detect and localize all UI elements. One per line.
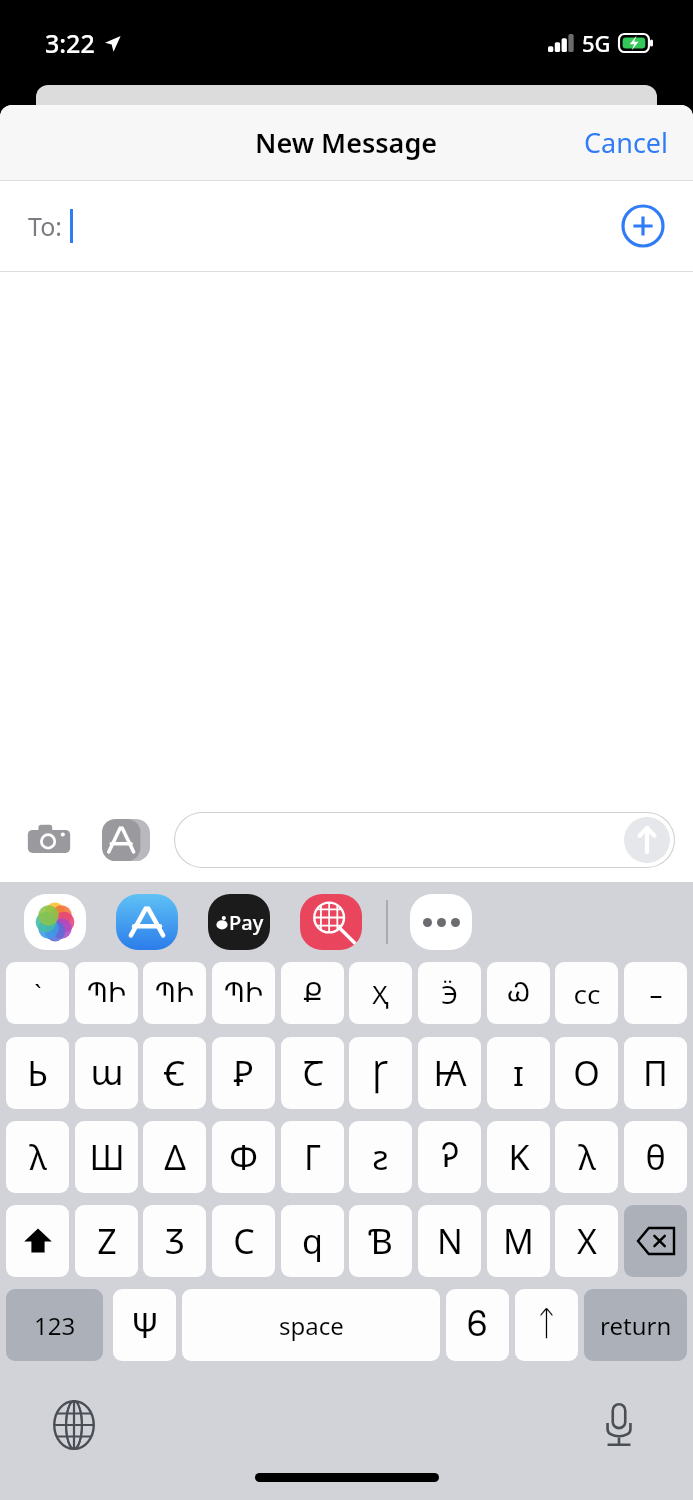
button[interactable]: Ν [418, 1205, 481, 1277]
staticText: λ [578, 1134, 596, 1180]
staticText: Δ [164, 1134, 186, 1180]
button[interactable]: Ӭ [418, 962, 481, 1024]
staticText: Ψ [131, 1302, 159, 1348]
button[interactable]: Ꮾ [446, 1289, 509, 1361]
button[interactable]: ՊԻ [143, 962, 206, 1024]
button[interactable]: Ꞇ [281, 1037, 344, 1109]
button[interactable]: ᛏ [515, 1289, 578, 1361]
button[interactable]: Ꙗ [418, 1037, 481, 1109]
button[interactable]: ` [6, 962, 69, 1024]
button[interactable]: Ɓ [349, 1205, 412, 1277]
button[interactable]: Ꮗ [487, 962, 550, 1024]
button[interactable]: ԛ [281, 1205, 344, 1277]
button[interactable]: Next keyboard [48, 1399, 100, 1451]
staticText: ա [90, 1053, 124, 1093]
button[interactable]: Π [624, 1037, 687, 1109]
button[interactable]: Κ [487, 1121, 550, 1193]
staticText: – [649, 976, 663, 1011]
button[interactable]: Shift [6, 1205, 69, 1277]
button[interactable]: λ [555, 1121, 618, 1193]
button[interactable]: Ꞓ [143, 1037, 206, 1109]
button[interactable]: Ь [6, 1037, 69, 1109]
button[interactable]: ՊԻ [75, 962, 138, 1024]
staticText: New Message [255, 124, 438, 161]
staticText: ՊԻ [155, 978, 194, 1008]
staticText: Ꮾ [467, 1308, 488, 1342]
button[interactable]: 123 [6, 1289, 103, 1361]
staticText: Ӭ [441, 976, 458, 1011]
button[interactable]: Dictation [593, 1399, 645, 1451]
button[interactable]: Camera [26, 817, 72, 863]
staticText: To: [28, 209, 62, 243]
staticText: 123 [34, 1309, 76, 1342]
staticText: Κ [508, 1134, 530, 1180]
button[interactable]: ꙅ [349, 1121, 412, 1193]
button[interactable]: More apps [410, 894, 472, 950]
button[interactable]: θ [624, 1121, 687, 1193]
button[interactable]: Δ [143, 1121, 206, 1193]
staticText: C [233, 1218, 255, 1264]
staticText: Ꞅ [372, 1050, 389, 1096]
button[interactable]: ՊԻ [212, 962, 275, 1024]
button[interactable]: Ʒ [143, 1205, 206, 1277]
button[interactable]: Ꭾ [418, 1121, 481, 1193]
staticText: ᛏ [536, 1308, 557, 1342]
button[interactable]: Ҳ [349, 962, 412, 1024]
button[interactable]: C [212, 1205, 275, 1277]
staticText: Φ [229, 1134, 258, 1180]
staticText: Ꮗ [508, 980, 530, 1006]
staticText: 5G [582, 28, 611, 58]
staticText: Z [97, 1218, 117, 1264]
button[interactable]: Ψ [113, 1289, 176, 1361]
button[interactable]: return [584, 1289, 687, 1361]
button[interactable]: Ք [281, 962, 344, 1024]
staticText: 3:22 [45, 26, 95, 60]
button[interactable]: ա [75, 1037, 138, 1109]
button[interactable]: Z [75, 1205, 138, 1277]
staticText: ᴄᴄ [573, 976, 601, 1011]
button[interactable]: Χ [555, 1205, 618, 1277]
button[interactable]: Backspace [624, 1205, 687, 1277]
staticText: Ք [303, 978, 323, 1008]
staticText: space [279, 1309, 344, 1342]
button[interactable]: App Store [102, 816, 150, 864]
button[interactable]: Add contact [621, 204, 665, 248]
button[interactable]: – [624, 962, 687, 1024]
staticText: ԛ [302, 1218, 323, 1264]
button[interactable]: Ꝑ [212, 1037, 275, 1109]
button[interactable]: Send [174, 812, 675, 868]
staticText: Ꞓ [164, 1050, 185, 1096]
button[interactable]: Μ [487, 1205, 550, 1277]
staticText: Ʒ [165, 1218, 185, 1264]
button[interactable]: Cancel [560, 114, 693, 171]
other: Send [624, 817, 670, 863]
button[interactable]: ᴄᴄ [555, 962, 618, 1024]
staticText: Ꝑ [233, 1050, 254, 1096]
button[interactable]: Ꞅ [349, 1037, 412, 1109]
button[interactable]: Γ [281, 1121, 344, 1193]
staticText: λ [29, 1134, 47, 1180]
button[interactable]: Φ [212, 1121, 275, 1193]
staticText: Ꙗ [433, 1050, 467, 1096]
staticText: ɪ [513, 1050, 524, 1096]
button[interactable]: space [182, 1289, 440, 1361]
staticText: Γ [304, 1134, 321, 1180]
button[interactable]: Photos [24, 894, 86, 950]
staticText: Ꞇ [302, 1050, 324, 1096]
staticText: ՊԻ [224, 978, 263, 1008]
staticText: ꙅ [372, 1134, 389, 1180]
staticText: Ꭾ [441, 1140, 459, 1174]
button[interactable]: λ [6, 1121, 69, 1193]
button[interactable]: App Store [116, 894, 178, 950]
staticText: return [600, 1309, 672, 1342]
button[interactable]: Ο [555, 1037, 618, 1109]
staticText: Μ [503, 1218, 534, 1264]
button[interactable]: Search images [300, 894, 362, 950]
button[interactable]: Ш [75, 1121, 138, 1193]
staticText: Ҳ [372, 976, 389, 1011]
button[interactable]: Apple Pay [208, 894, 270, 950]
staticText: ` [34, 976, 42, 1011]
button[interactable]: ɪ [487, 1037, 550, 1109]
staticText: Ɓ [368, 1218, 393, 1264]
staticText: θ [645, 1134, 666, 1180]
